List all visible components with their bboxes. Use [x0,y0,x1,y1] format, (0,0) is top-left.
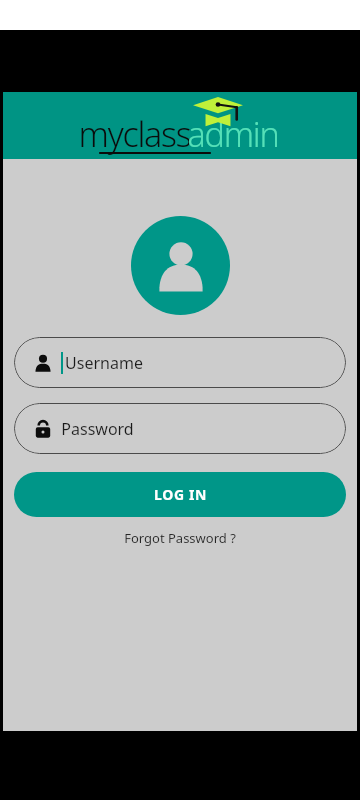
staticText: Password [61,418,134,440]
button[interactable]: Forgot Password ? [116,526,244,550]
staticText: Forgot Password ? [124,529,236,547]
button[interactable]: Password [14,403,346,454]
staticText: myclass [78,111,191,157]
staticText: Username [65,352,143,374]
button[interactable]: LOG IN [14,472,346,517]
staticText: LOG IN [154,485,207,504]
staticText: admin [187,111,279,157]
button[interactable]: Username [14,337,346,388]
